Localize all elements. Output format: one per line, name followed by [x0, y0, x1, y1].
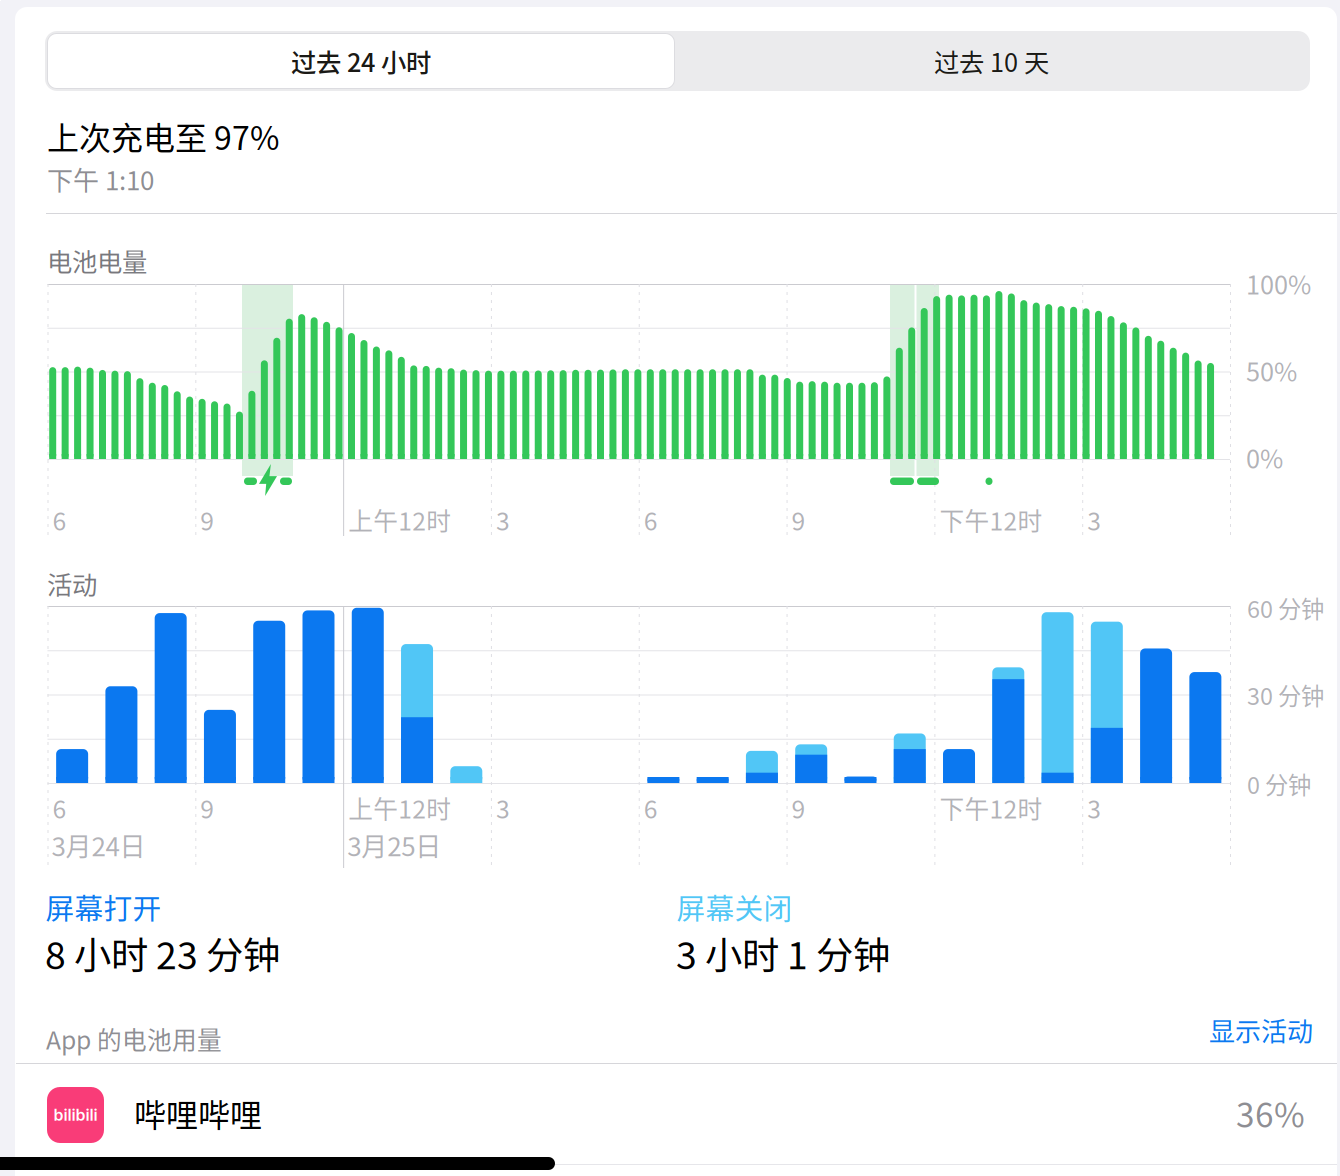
staticText: 6	[52, 502, 66, 538]
staticText: 3	[496, 502, 510, 538]
staticText: 8 小时 23 分钟	[45, 926, 280, 980]
staticText: 9	[200, 790, 214, 826]
staticText: 下午 1:10	[47, 160, 154, 198]
staticText: 6	[644, 502, 658, 538]
staticText: 9	[792, 502, 806, 538]
button[interactable]: 过去 10 天	[678, 33, 1305, 88]
staticText: 100%	[1246, 265, 1311, 302]
button[interactable]: 显示活动	[1053, 1008, 1313, 1052]
staticText: 3	[1087, 790, 1101, 826]
staticText: 50%	[1246, 352, 1297, 389]
staticText: 3	[1087, 502, 1101, 538]
staticText: 上午12时	[348, 790, 451, 826]
staticText: 36%	[1236, 1089, 1305, 1137]
staticText: 0%	[1246, 439, 1283, 476]
staticText: 屏幕关闭	[676, 886, 792, 927]
staticText: 过去 10 天	[934, 43, 1049, 79]
staticText: 下午12时	[939, 790, 1042, 826]
staticText: 3月24日	[51, 826, 145, 864]
staticText: 6	[52, 790, 66, 826]
staticText: 6	[644, 790, 658, 826]
staticText: 9	[200, 502, 214, 538]
staticText: 过去 24 小时	[291, 43, 431, 79]
button[interactable]: 过去 24 小时	[47, 33, 674, 88]
staticText: 显示活动	[1209, 1011, 1313, 1049]
staticText: 屏幕打开	[45, 886, 161, 927]
staticText: 活动	[47, 565, 97, 602]
staticText: 9	[792, 790, 806, 826]
staticText: App 的电池用量	[46, 1021, 222, 1057]
staticText: 3月25日	[347, 826, 441, 864]
staticText: 上次充电至 97%	[47, 113, 279, 159]
staticText: 0 分钟	[1247, 767, 1311, 801]
staticText: 30 分钟	[1247, 678, 1324, 712]
staticText: 60 分钟	[1247, 591, 1324, 625]
staticText: 3	[496, 790, 510, 826]
button[interactable]: bilibili	[15, 1069, 1337, 1176]
staticText: 哔哩哔哩	[134, 1090, 262, 1136]
staticText: 下午12时	[939, 502, 1042, 538]
staticText: 上午12时	[348, 502, 451, 538]
staticText: 电池电量	[47, 242, 147, 279]
staticText: bilibili	[53, 1105, 97, 1125]
staticText: 3 小时 1 分钟	[676, 926, 890, 980]
